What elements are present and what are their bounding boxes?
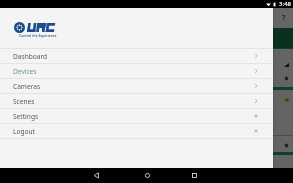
staticText: Scenes [13,97,35,106]
staticText: Settings [13,112,39,121]
staticText: Control the Experience [19,33,57,37]
button[interactable]: Cameras [0,79,273,93]
button[interactable]: Devices [0,64,273,78]
button[interactable]: Back [93,172,100,179]
button[interactable]: Scenes [0,94,273,108]
staticText: ? [282,13,286,23]
button[interactable]: Home [144,172,151,179]
button[interactable]: Dashboard [0,49,273,63]
staticText: Logout [13,127,35,136]
staticText: Cameras [13,82,41,91]
button[interactable]: Recents [191,172,198,179]
staticText: Dashboard [13,52,48,61]
button[interactable]: Logout [0,124,273,138]
staticText: 3:48 [279,0,291,8]
button[interactable]: Settings [0,109,273,123]
staticText: Devices [13,67,37,76]
